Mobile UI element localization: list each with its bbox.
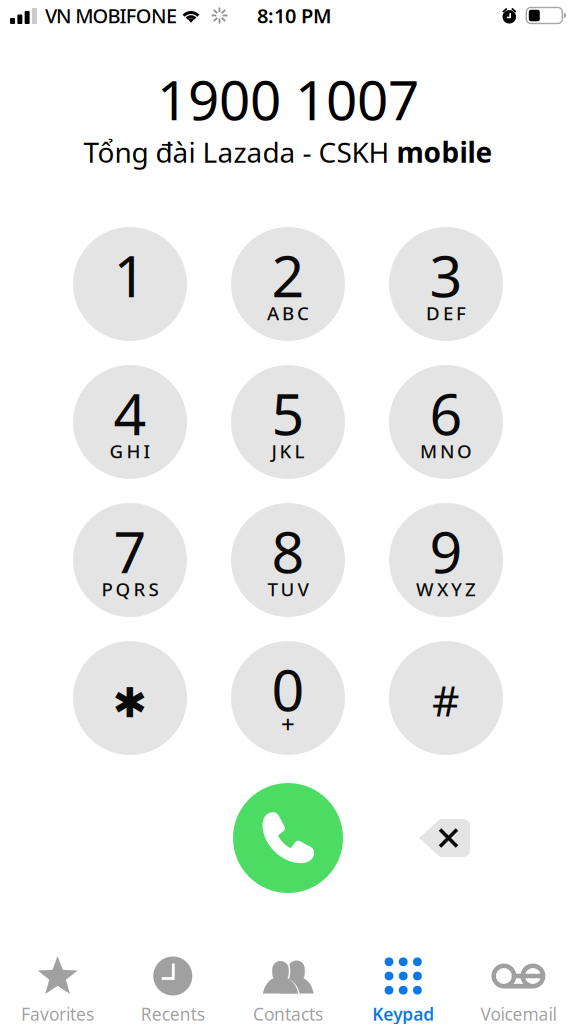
- staticText: 6: [429, 375, 462, 451]
- button[interactable]: Delete: [419, 819, 470, 857]
- staticText: Favorites: [21, 1002, 94, 1024]
- button[interactable]: 1: [73, 227, 187, 341]
- staticText: 4: [113, 375, 146, 451]
- staticText: T: [267, 577, 277, 601]
- button[interactable]: 3: [389, 227, 503, 341]
- staticText: Y: [451, 577, 462, 601]
- staticText: Keypad: [372, 1002, 434, 1024]
- staticText: 8:10 PM: [257, 2, 332, 29]
- staticText: O: [457, 439, 472, 463]
- staticText: U: [280, 577, 294, 601]
- staticText: Z: [465, 577, 476, 601]
- staticText: 1: [113, 237, 146, 313]
- button[interactable]: 8: [231, 503, 345, 617]
- staticText: 5: [271, 375, 304, 451]
- staticText: J: [271, 439, 276, 463]
- staticText: Voicemail: [480, 1002, 556, 1024]
- staticText: mobile: [396, 133, 492, 171]
- button[interactable]: Call: [233, 783, 343, 893]
- staticText: P: [101, 577, 112, 601]
- staticText: ✱: [112, 679, 147, 726]
- staticText: 1900 1007: [157, 63, 419, 135]
- button[interactable]: ✱: [73, 641, 187, 755]
- staticText: 9: [429, 513, 462, 589]
- staticText: E: [443, 301, 453, 325]
- button[interactable]: 7: [73, 503, 187, 617]
- staticText: X: [437, 577, 448, 601]
- button[interactable]: #: [389, 641, 503, 755]
- staticText: Recents: [141, 1002, 205, 1024]
- staticText: B: [282, 301, 294, 325]
- staticText: S: [148, 577, 158, 601]
- button[interactable]: 5: [231, 365, 345, 479]
- staticText: Tổng đài Lazada - CSKH: [83, 133, 396, 171]
- staticText: Contacts: [253, 1002, 323, 1024]
- staticText: C: [297, 301, 309, 325]
- staticText: M: [420, 439, 437, 463]
- button[interactable]: 2: [231, 227, 345, 341]
- button[interactable]: Keypad: [346, 938, 461, 1024]
- staticText: V: [297, 577, 308, 601]
- staticText: F: [456, 301, 466, 325]
- staticText: H: [126, 439, 140, 463]
- staticText: +: [281, 708, 295, 740]
- button[interactable]: Favorites: [0, 938, 115, 1024]
- button[interactable]: 9: [389, 503, 503, 617]
- staticText: R: [133, 577, 145, 601]
- button[interactable]: 0: [231, 641, 345, 755]
- button[interactable]: 6: [389, 365, 503, 479]
- staticText: G: [109, 439, 123, 463]
- staticText: K: [279, 439, 291, 463]
- staticText: W: [416, 577, 434, 601]
- staticText: 2: [271, 237, 304, 313]
- staticText: #: [432, 672, 460, 728]
- staticText: 3: [429, 237, 462, 313]
- staticText: I: [143, 439, 150, 463]
- button[interactable]: Recents: [115, 938, 230, 1024]
- staticText: 7: [113, 513, 146, 589]
- staticText: N: [440, 439, 454, 463]
- staticText: VN MOBIFONE: [45, 2, 177, 29]
- staticText: A: [267, 301, 279, 325]
- button[interactable]: Voicemail: [461, 938, 576, 1024]
- button[interactable]: Contacts: [230, 938, 346, 1024]
- staticText: L: [294, 439, 304, 463]
- staticText: D: [426, 301, 440, 325]
- staticText: Q: [115, 577, 130, 601]
- staticText: 0: [271, 651, 304, 727]
- staticText: 8: [271, 513, 304, 589]
- button[interactable]: 4: [73, 365, 187, 479]
